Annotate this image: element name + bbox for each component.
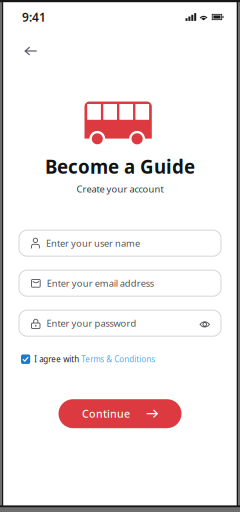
button[interactable]: I agree with Terms and Conditions: [21, 353, 30, 365]
button[interactable]: Enter your password: [19, 310, 221, 336]
button[interactable]: Enter your email address: [19, 270, 221, 296]
staticText: Terms & Conditions: [81, 354, 155, 364]
staticText: 9:41: [22, 9, 46, 25]
staticText: Continue: [82, 407, 130, 421]
staticText: Become a Guide: [45, 154, 195, 179]
button[interactable]: Enter your user name: [19, 230, 221, 256]
button[interactable]: Continue: [58, 399, 181, 428]
button[interactable]: Back: [17, 37, 45, 65]
staticText: Enter your password: [46, 317, 136, 329]
button[interactable]: Terms & Conditions: [81, 354, 155, 364]
staticText: Create your account: [76, 183, 163, 195]
staticText: I agree with: [34, 354, 81, 364]
staticText: Enter your user name: [46, 237, 140, 249]
staticText: Enter your email address: [47, 277, 154, 289]
